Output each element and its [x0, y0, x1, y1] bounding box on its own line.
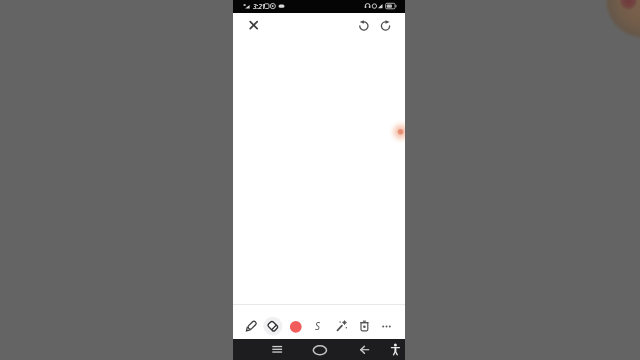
button[interactable] [262, 315, 284, 337]
button[interactable] [285, 315, 307, 337]
button[interactable] [385, 339, 405, 360]
button[interactable] [309, 339, 331, 360]
button[interactable] [307, 315, 329, 337]
button[interactable] [240, 315, 262, 337]
button[interactable] [243, 15, 264, 36]
button[interactable] [330, 315, 352, 337]
staticText: 3:21 [253, 2, 266, 11]
button[interactable] [390, 120, 405, 144]
button[interactable] [353, 315, 375, 337]
button[interactable] [354, 339, 376, 360]
button[interactable] [375, 15, 396, 36]
staticText: S [315, 319, 321, 333]
button[interactable] [353, 15, 374, 36]
button[interactable] [376, 315, 398, 337]
button[interactable] [266, 339, 288, 360]
